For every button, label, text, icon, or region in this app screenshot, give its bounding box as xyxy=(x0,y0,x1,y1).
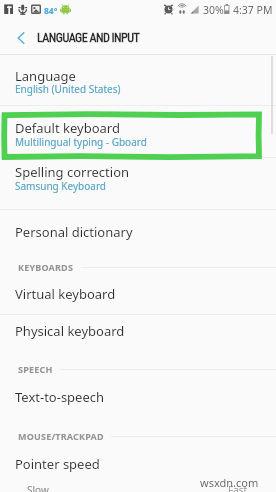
staticText: 4:37 PM xyxy=(233,3,273,17)
staticText: English (United States) xyxy=(15,82,121,96)
button[interactable]: Text-to-speech xyxy=(0,379,276,419)
staticText: wsxdn.com xyxy=(200,475,259,490)
staticText: Default keyboard xyxy=(15,119,120,137)
staticText: Language xyxy=(15,67,76,85)
staticText: LANGUAGE AND INPUT xyxy=(37,31,140,45)
staticText: Virtual keyboard xyxy=(15,285,116,303)
staticText: Samsung Keyboard xyxy=(15,179,106,193)
button[interactable]: Physical keyboard xyxy=(0,315,276,352)
staticText: Fast xyxy=(228,483,248,492)
staticText: KEYBOARDS xyxy=(18,261,74,273)
button[interactable]: Pointer speed xyxy=(0,446,276,492)
staticText: MOUSE/TRACKPAD xyxy=(18,430,104,442)
button[interactable]: Personal dictionary xyxy=(0,210,276,250)
staticText: Spelling correction xyxy=(15,163,130,181)
staticText: SPEECH xyxy=(18,363,53,375)
staticText: 84° xyxy=(44,5,58,17)
button[interactable]: Language xyxy=(0,56,276,106)
button[interactable]: Spelling correction xyxy=(0,158,276,209)
staticText: Multilingual typing - Gboard xyxy=(15,135,147,149)
staticText: Pointer speed xyxy=(15,455,100,473)
button[interactable]: Virtual keyboard xyxy=(0,276,276,314)
button[interactable]: Default keyboard xyxy=(0,106,276,158)
staticText: 30% xyxy=(203,3,224,17)
staticText: Personal dictionary xyxy=(15,223,133,241)
staticText: Physical keyboard xyxy=(15,322,125,340)
staticText: Text-to-speech xyxy=(15,388,105,406)
staticText: Slow xyxy=(27,483,49,492)
button[interactable]: Back xyxy=(8,25,34,51)
